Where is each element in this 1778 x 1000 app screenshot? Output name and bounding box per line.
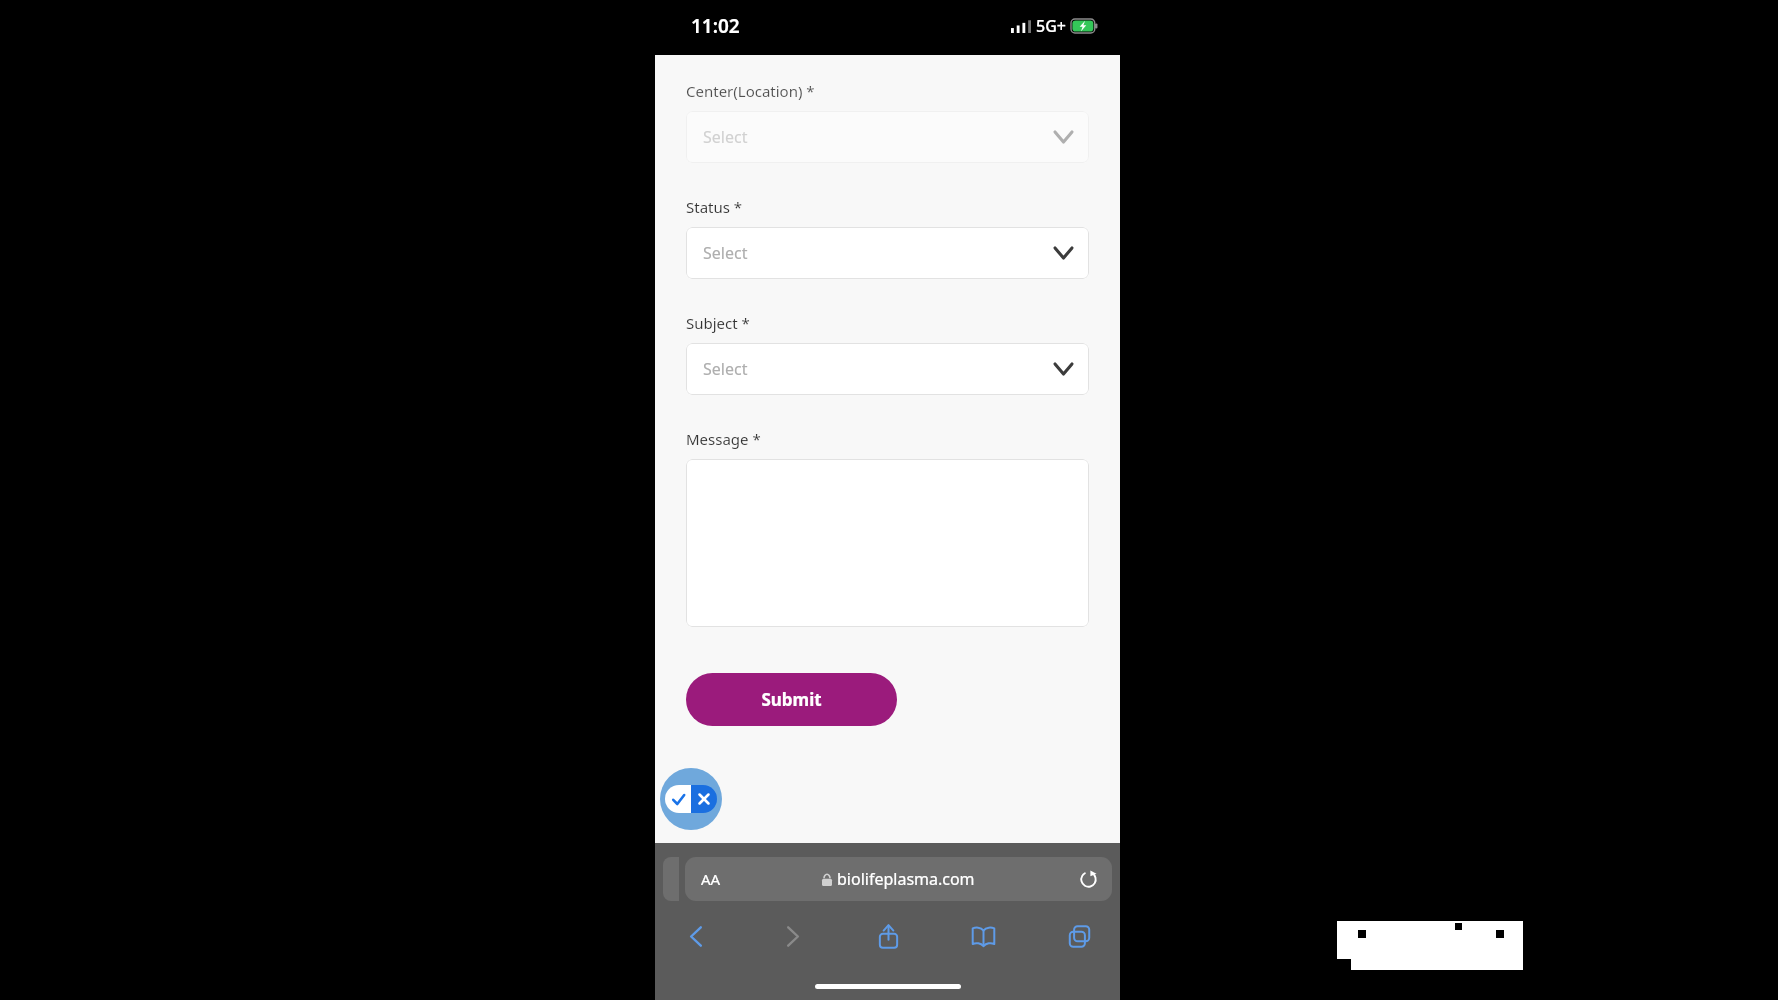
- button[interactable]: Status: [686, 227, 1089, 279]
- staticText: 11:02: [691, 13, 740, 39]
- staticText: biolifeplasma.com: [837, 868, 975, 890]
- button[interactable]: Forward: [773, 917, 811, 955]
- staticText: Submit: [761, 688, 822, 711]
- staticText: Status *: [686, 197, 743, 217]
- button[interactable]: Accessibility widget: [660, 768, 722, 830]
- staticText: Subject *: [686, 313, 750, 333]
- button[interactable]: Reload: [1079, 870, 1098, 889]
- button[interactable]: Back: [677, 917, 715, 955]
- button[interactable]: Previous tab: [663, 857, 679, 901]
- staticText: Select: [703, 242, 748, 264]
- staticText: AA: [701, 869, 721, 889]
- staticText: 5G+: [1036, 15, 1066, 37]
- button[interactable]: Address bar: [685, 857, 1112, 901]
- button[interactable]: Bookmarks: [964, 917, 1002, 955]
- staticText: Center(Location) *: [686, 81, 815, 101]
- staticText: Message *: [686, 429, 761, 449]
- button[interactable]: Subject: [686, 343, 1089, 395]
- button[interactable]: Tabs: [1060, 917, 1098, 955]
- button[interactable]: Submit: [686, 673, 897, 726]
- button[interactable]: Share: [869, 917, 907, 955]
- button[interactable]: Center Location: [686, 111, 1089, 163]
- button[interactable]: Message: [686, 459, 1089, 627]
- staticText: Select: [703, 358, 748, 380]
- staticText: Select: [703, 126, 748, 148]
